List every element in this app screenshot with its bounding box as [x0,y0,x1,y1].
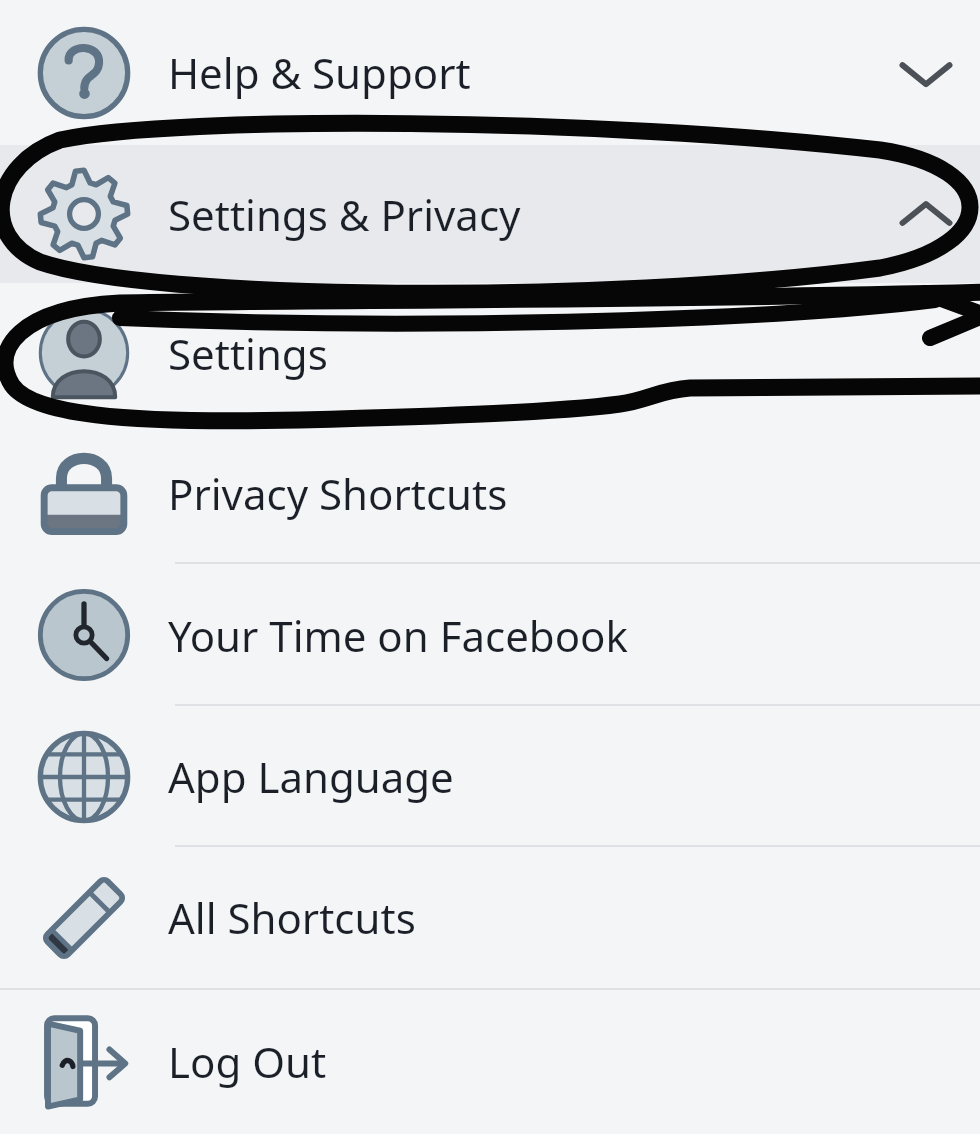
staticText: Settings & Privacy [168,186,521,243]
staticText: App Language [168,748,454,805]
staticText: Settings [168,325,328,382]
button[interactable]: Log Out [0,990,980,1132]
staticText: Your Time on Facebook [168,607,628,664]
staticText: All Shortcuts [168,889,416,946]
other: Expand [898,45,954,101]
staticText: Privacy Shortcuts [168,465,508,522]
other: Collapse [898,186,954,242]
button[interactable]: Your Time on Facebook [0,564,980,706]
button[interactable]: Settings & Privacy [0,145,980,283]
button[interactable]: Privacy Shortcuts [0,423,980,564]
button[interactable]: App Language [0,706,980,847]
button[interactable]: Settings [0,283,980,423]
staticText: Help & Support [168,44,471,101]
button[interactable]: Help & Support [0,0,980,145]
staticText: Log Out [168,1033,327,1090]
button[interactable]: All Shortcuts [0,847,980,988]
